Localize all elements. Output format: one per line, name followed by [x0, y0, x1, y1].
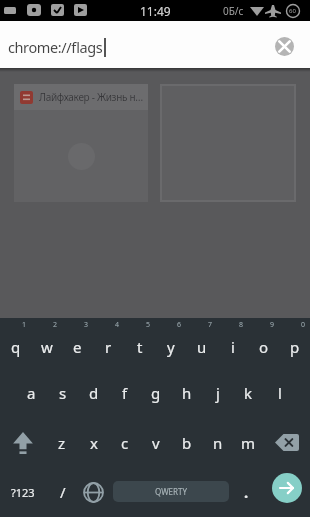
staticText: / [60, 482, 66, 502]
staticText: 7 [208, 320, 213, 330]
staticText: r [105, 337, 112, 357]
button[interactable]: n [202, 418, 233, 467]
staticText: 6 [177, 320, 182, 330]
button[interactable]: v [140, 418, 171, 467]
button[interactable]: ?123 [0, 467, 46, 517]
staticText: f [122, 383, 128, 403]
staticText: a [27, 383, 36, 403]
staticText: m [241, 433, 256, 453]
staticText: n [213, 433, 223, 453]
staticText: p [290, 337, 300, 357]
staticText: chrome://flags [8, 37, 103, 57]
staticText: c [121, 433, 129, 453]
button[interactable]: m [233, 418, 264, 467]
staticText: 2 [53, 320, 58, 330]
button[interactable]: b [171, 418, 202, 467]
button[interactable]: 0 [279, 318, 310, 368]
button[interactable]: g [140, 368, 171, 418]
staticText: u [197, 337, 207, 357]
staticText: 4 [115, 320, 120, 330]
button[interactable]: 4 [93, 318, 124, 368]
staticText: s [59, 383, 67, 403]
button[interactable]: 6 [155, 318, 186, 368]
button[interactable]: 2 [31, 318, 62, 368]
staticText: j [216, 383, 220, 403]
button[interactable] [275, 37, 294, 56]
button[interactable]: 5 [124, 318, 155, 368]
staticText: 9 [270, 320, 275, 330]
staticText: e [73, 337, 82, 357]
button[interactable]: f [109, 368, 140, 418]
staticText: 5 [146, 320, 151, 330]
button[interactable]: x [78, 418, 109, 467]
staticText: o [259, 337, 269, 357]
staticText: i [231, 337, 235, 357]
button[interactable]: h [171, 368, 202, 418]
staticText: h [182, 383, 192, 403]
staticText: 1 [22, 320, 27, 330]
staticText: z [58, 433, 66, 453]
button[interactable]: j [202, 368, 233, 418]
staticText: 11:49 [140, 3, 171, 19]
staticText: 60 [289, 7, 296, 15]
button[interactable]: l [264, 368, 295, 418]
staticText: b [182, 433, 192, 453]
button[interactable]: 8 [217, 318, 248, 368]
button[interactable] [264, 418, 310, 467]
button[interactable] [78, 467, 109, 517]
button[interactable]: s [47, 368, 78, 418]
staticText: ?123 [11, 485, 35, 500]
button[interactable]: / [47, 467, 78, 517]
button[interactable]: 7 [186, 318, 217, 368]
staticText: . [244, 482, 249, 502]
button[interactable]: c [109, 418, 140, 467]
staticText: 8 [239, 320, 244, 330]
button[interactable]: z [46, 418, 78, 467]
staticText: g [151, 383, 161, 403]
button[interactable]: a [15, 368, 47, 418]
button[interactable]: d [78, 368, 109, 418]
staticText: Лайфхакер - Жизнь н… [39, 90, 143, 104]
staticText: t [137, 337, 143, 357]
staticText: QWERTY [155, 486, 188, 497]
staticText: d [89, 383, 99, 403]
button[interactable]: Лайфхакер - Жизнь н… [14, 84, 148, 202]
button[interactable] [0, 418, 46, 467]
button[interactable]: . [234, 467, 258, 517]
staticText: 0 [301, 320, 306, 330]
staticText: q [11, 337, 21, 357]
staticText: y [167, 337, 175, 357]
button[interactable]: chrome://flags [0, 21, 310, 68]
button[interactable]: 9 [248, 318, 279, 368]
button[interactable]: 1 [0, 318, 31, 368]
staticText: v [152, 433, 160, 453]
button[interactable]: 3 [62, 318, 93, 368]
staticText: 3 [84, 320, 89, 330]
staticText: w [41, 337, 53, 357]
staticText: l [278, 383, 282, 403]
staticText: x [90, 433, 98, 453]
staticText: k [244, 383, 253, 403]
staticText: 0Б/с [223, 4, 244, 18]
button[interactable] [272, 473, 302, 503]
button[interactable]: k [233, 368, 264, 418]
button[interactable]: QWERTY [113, 481, 229, 502]
